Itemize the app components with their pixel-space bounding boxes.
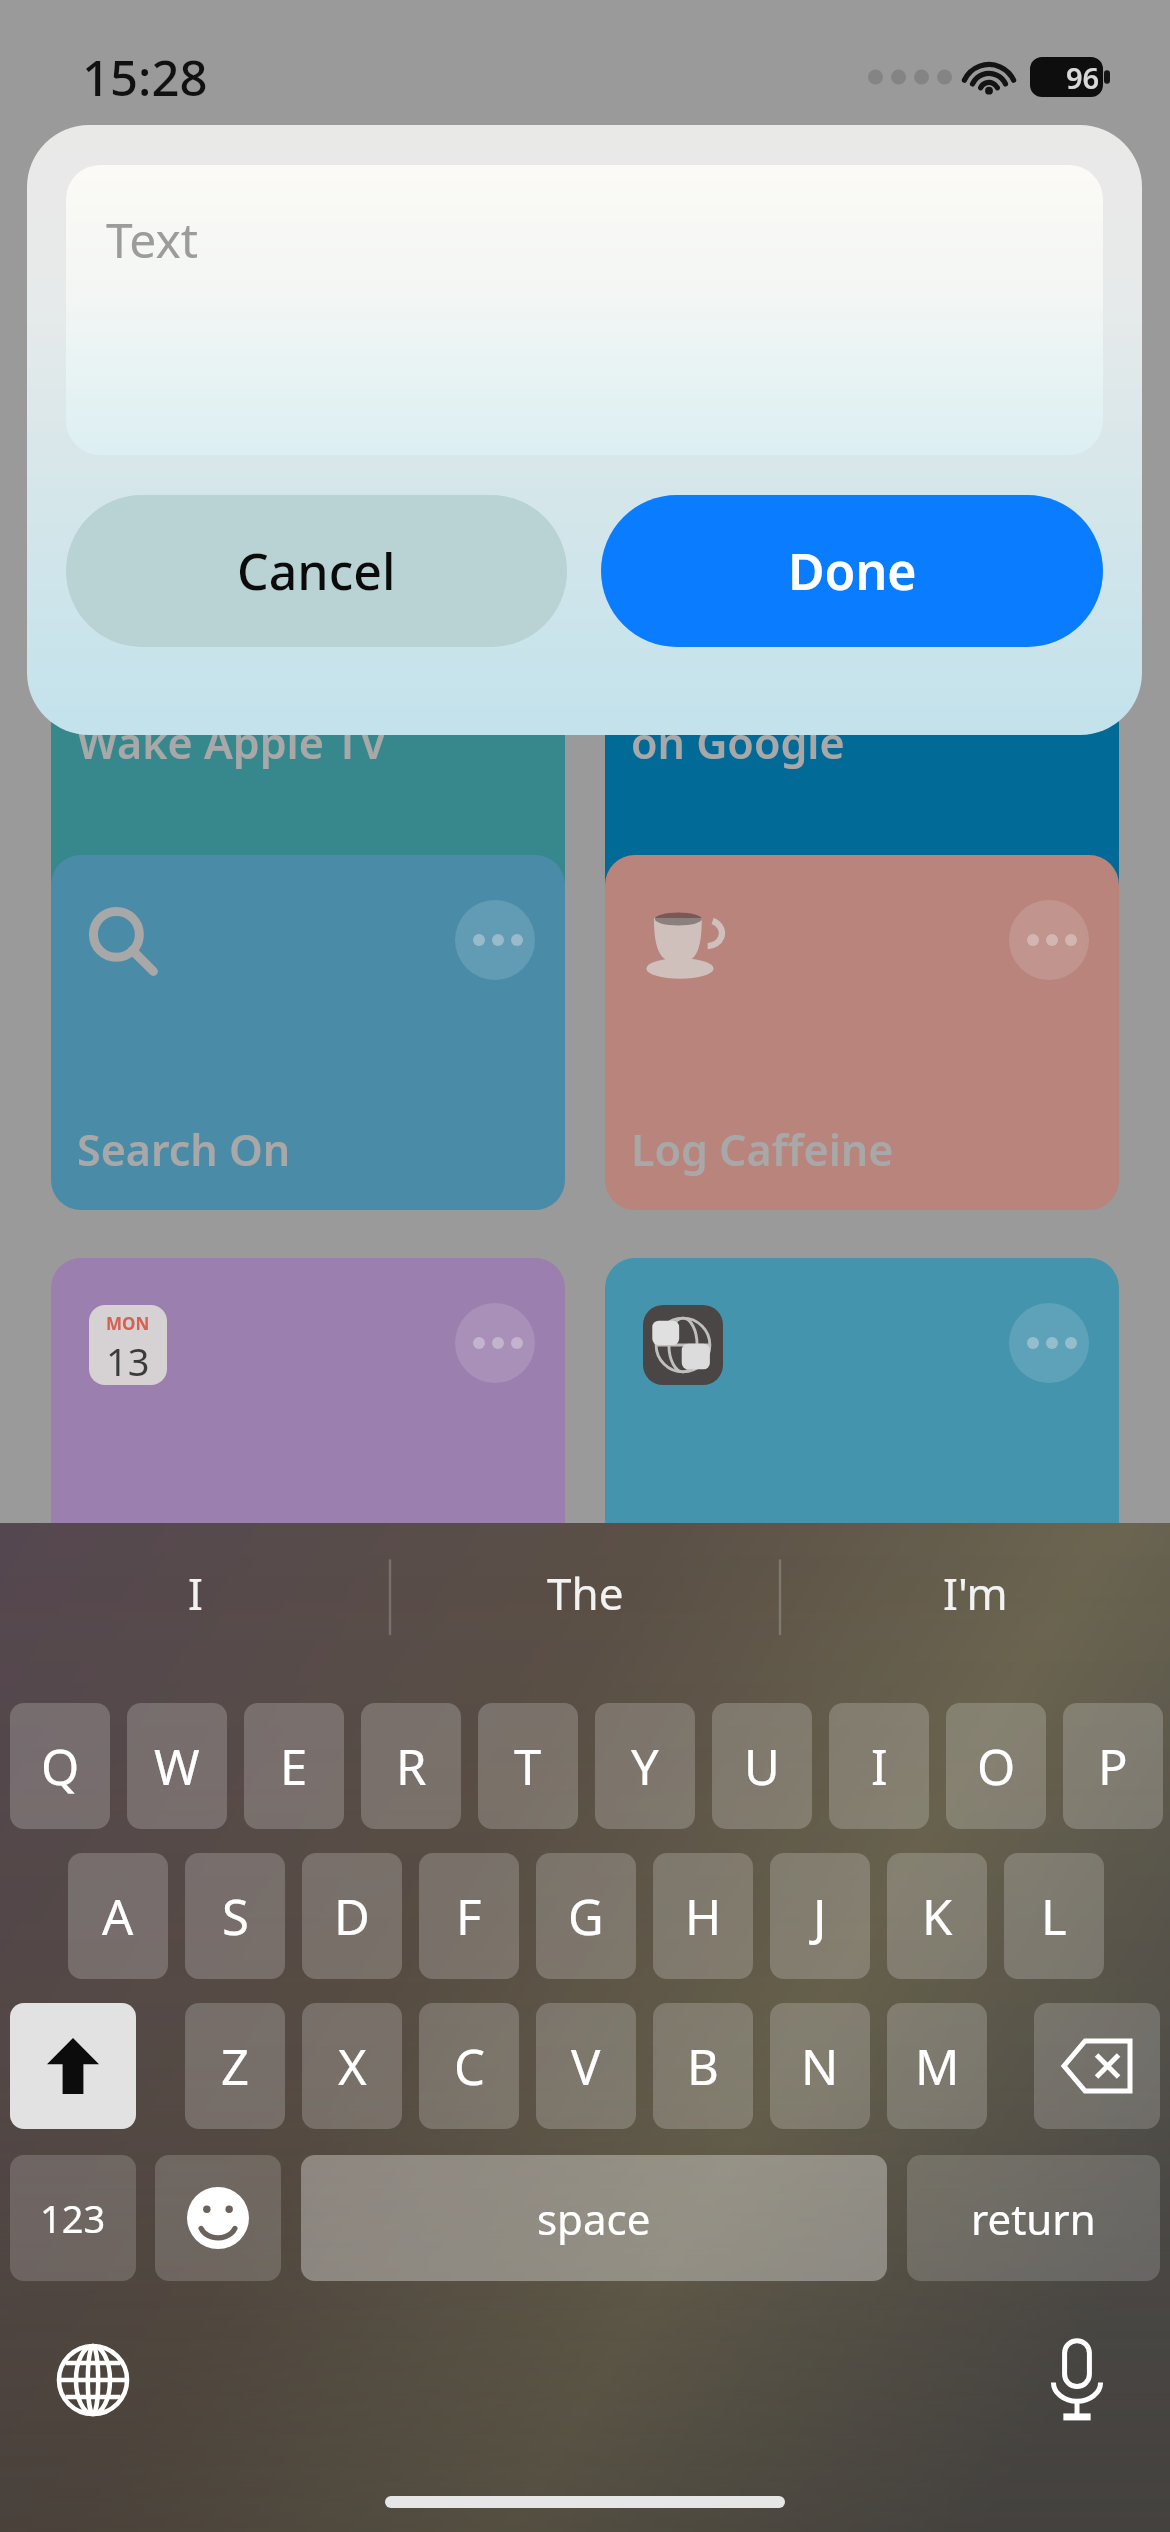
staticText: Q — [41, 1733, 80, 1800]
button[interactable]: More options — [1009, 900, 1089, 980]
staticText: Text — [106, 207, 199, 272]
button[interactable]: More options — [605, 560, 1119, 935]
button[interactable]: H — [653, 1853, 753, 1979]
staticText: L — [1041, 1883, 1067, 1950]
button[interactable]: B — [653, 2003, 753, 2129]
staticText: U — [744, 1733, 780, 1800]
button[interactable]: L — [1004, 1853, 1104, 1979]
button[interactable]: Dictation — [1022, 2325, 1132, 2435]
button[interactable]: More options — [605, 855, 1119, 1210]
staticText: 96 — [1066, 58, 1100, 97]
button[interactable]: I'm — [780, 1523, 1170, 1663]
staticText: 15:28 — [82, 44, 208, 111]
staticText: T — [514, 1733, 542, 1800]
button[interactable]: Switch keyboard — [38, 2325, 148, 2435]
button[interactable]: V — [536, 2003, 636, 2129]
staticText: Cancel — [237, 537, 396, 605]
staticText: V — [571, 2033, 601, 2100]
button[interactable]: Z — [185, 2003, 285, 2129]
button[interactable]: K — [887, 1853, 987, 1979]
staticText: 123 — [40, 2192, 106, 2244]
staticText: The — [547, 1563, 624, 1623]
button[interactable]: More options — [1009, 1303, 1089, 1383]
button[interactable]: MON — [51, 1258, 565, 1613]
staticText: D — [334, 1883, 370, 1950]
button[interactable]: R — [361, 1703, 461, 1829]
button[interactable]: U — [712, 1703, 812, 1829]
button[interactable]: 123 — [10, 2155, 136, 2281]
staticText: Log Caffeine — [631, 1120, 894, 1179]
staticText: Y — [631, 1733, 659, 1800]
staticText: Z — [221, 2033, 250, 2100]
button[interactable]: The — [390, 1523, 780, 1663]
button[interactable]: return — [907, 2155, 1160, 2281]
staticText: I'm — [943, 1563, 1008, 1623]
staticText: I — [871, 1733, 888, 1800]
staticText: MON — [106, 1312, 150, 1335]
button[interactable]: More options — [51, 560, 565, 935]
button[interactable]: More options — [455, 605, 535, 685]
staticText: W — [154, 1733, 200, 1800]
staticText: K — [922, 1883, 953, 1950]
button[interactable]: W — [127, 1703, 227, 1829]
button[interactable]: A — [68, 1853, 168, 1979]
button[interactable]: Emoji — [155, 2155, 281, 2281]
button[interactable]: S — [185, 1853, 285, 1979]
button[interactable]: More options — [455, 1303, 535, 1383]
button[interactable]: C — [419, 2003, 519, 2129]
button[interactable]: Cancel — [66, 495, 567, 647]
staticText: on Google — [631, 713, 845, 772]
button[interactable]: P — [1063, 1703, 1163, 1829]
button[interactable]: space — [301, 2155, 887, 2281]
staticText: F — [456, 1883, 482, 1950]
button[interactable]: J — [770, 1853, 870, 1979]
button[interactable]: More options — [1009, 605, 1089, 685]
button[interactable]: I — [0, 1523, 390, 1663]
staticText: J — [813, 1883, 827, 1950]
staticText: I — [188, 1563, 203, 1623]
button[interactable]: O — [946, 1703, 1046, 1829]
button[interactable]: Shift — [10, 2003, 136, 2129]
staticText: E — [280, 1733, 308, 1800]
button[interactable]: T — [478, 1703, 578, 1829]
staticText: B — [687, 2033, 719, 2100]
button[interactable]: Text — [66, 165, 1103, 455]
staticText: G — [568, 1883, 604, 1950]
staticText: A — [102, 1883, 134, 1950]
button[interactable]: X — [302, 2003, 402, 2129]
staticText: P — [1098, 1733, 1128, 1800]
button[interactable]: N — [770, 2003, 870, 2129]
staticText: N — [801, 2033, 839, 2100]
staticText: S — [222, 1883, 249, 1950]
button[interactable]: Q — [10, 1703, 110, 1829]
button[interactable]: More options — [605, 1258, 1119, 1613]
button[interactable]: D — [302, 1853, 402, 1979]
button[interactable]: I — [829, 1703, 929, 1829]
button[interactable]: M — [887, 2003, 987, 2129]
button[interactable]: Done — [601, 495, 1103, 647]
staticText: M — [915, 2033, 960, 2100]
staticText: Wake Apple TV — [77, 713, 387, 772]
button[interactable]: Backspace — [1034, 2003, 1160, 2129]
button[interactable]: More options — [455, 900, 535, 980]
staticText: O — [977, 1733, 1016, 1800]
staticText: R — [396, 1733, 427, 1800]
staticText: X — [338, 2033, 367, 2100]
staticText: 13 — [106, 1335, 150, 1385]
staticText: Done — [788, 537, 917, 605]
button[interactable]: G — [536, 1853, 636, 1979]
button[interactable]: E — [244, 1703, 344, 1829]
staticText: Search On — [77, 1120, 291, 1179]
staticText: space — [537, 2190, 651, 2247]
staticText: H — [685, 1883, 722, 1950]
staticText: C — [454, 2033, 485, 2100]
button[interactable]: F — [419, 1853, 519, 1979]
button[interactable]: Y — [595, 1703, 695, 1829]
staticText: return — [971, 2190, 1096, 2247]
button[interactable]: More options — [51, 855, 565, 1210]
